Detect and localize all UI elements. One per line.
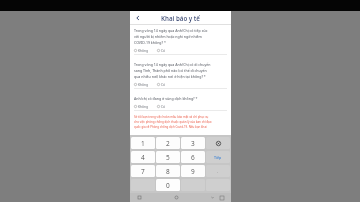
staticText: qua nhiều nơi) khác nơi ở hiện tại không… <box>134 74 206 79</box>
staticText: Tiếp <box>214 155 222 160</box>
staticText: Không <box>138 48 149 52</box>
button[interactable]: 8 <box>156 165 180 177</box>
staticText: Có <box>161 48 166 52</box>
button[interactable]: Có <box>157 82 166 86</box>
staticText: cho việc phòng chống dịch thuộc quản lý … <box>134 120 212 124</box>
button[interactable]: 9 <box>181 165 205 177</box>
button[interactable]: Back <box>209 194 216 201</box>
staticText: quốc gia về Phòng chống dịch Covid-19. N… <box>134 125 207 129</box>
staticText: COVID-19 không? * <box>134 40 166 45</box>
staticText: 6 <box>191 153 195 162</box>
button[interactable]: Home <box>173 194 180 201</box>
button[interactable]: Tiếp <box>206 151 230 163</box>
staticText: 3 <box>191 139 195 148</box>
button[interactable]: 1 <box>131 137 155 149</box>
staticText: Không <box>138 82 149 86</box>
button[interactable]: 5 <box>156 151 180 163</box>
button[interactable]: 7 <box>131 165 155 177</box>
staticText: 2 <box>166 139 170 148</box>
staticText: Khai báo y tế <box>161 14 200 22</box>
staticText: Có <box>161 82 166 86</box>
staticText: Có <box>161 104 166 108</box>
staticText: . <box>217 169 219 174</box>
button[interactable]: 6 <box>181 151 205 163</box>
button[interactable]: Backspace <box>206 137 230 149</box>
staticText: 7 <box>141 167 145 176</box>
button[interactable]: 2 <box>156 137 180 149</box>
staticText: Sở tôi bạn trong việc hoàn mẫu bảo mật v… <box>134 115 209 119</box>
staticText: Không <box>138 104 149 108</box>
staticText: với người bị nhiễm hoặc nghi ngờ nhiễm <box>134 34 202 39</box>
button[interactable]: Recents <box>136 194 143 201</box>
staticText: 0 <box>166 181 170 190</box>
staticText: Anh/chị có đang ở vùng dịch không? * <box>134 96 198 101</box>
staticText: 9 <box>191 167 195 176</box>
button[interactable]: 4 <box>131 151 155 163</box>
staticText: 8 <box>166 167 170 176</box>
staticText: Trong vòng 14 ngày qua Anh/Chị có di chu… <box>134 62 211 67</box>
button[interactable]: Có <box>157 104 166 108</box>
button[interactable]: Keyboard <box>218 194 225 201</box>
staticText: 5 <box>166 153 170 162</box>
button[interactable]: 0 <box>156 179 180 191</box>
staticText: Trong vòng 14 ngày qua Anh/Chị có tiếp x… <box>134 28 208 33</box>
button[interactable]: 3 <box>181 137 205 149</box>
button[interactable]: Có <box>157 48 166 52</box>
button[interactable]: Không <box>134 48 149 52</box>
staticText: 4 <box>141 153 145 162</box>
staticText: 1 <box>141 139 145 148</box>
staticText: sang Tỉnh, Thành phố nào (có thể di chuy… <box>134 68 207 73</box>
button[interactable]: Không <box>134 104 149 108</box>
button[interactable]: Không <box>134 82 149 86</box>
button[interactable]: Back <box>133 13 143 23</box>
